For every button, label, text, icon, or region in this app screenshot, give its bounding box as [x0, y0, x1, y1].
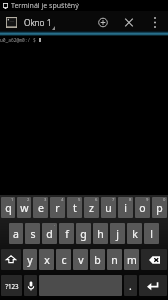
button[interactable]: Okno 1	[0, 11, 58, 34]
button[interactable]: e	[33, 197, 48, 218]
staticText: y	[27, 253, 33, 267]
button[interactable]: n	[107, 249, 122, 270]
button[interactable]: d	[42, 223, 57, 244]
staticText: 1	[11, 197, 14, 203]
staticText: k	[132, 227, 138, 241]
staticText: u0_a62@m0:/ $	[0, 37, 39, 43]
staticText: Okno 1	[24, 17, 52, 28]
staticText: a	[13, 227, 19, 241]
staticText: 2	[27, 197, 30, 203]
staticText: x	[44, 253, 50, 267]
staticText: h	[97, 227, 104, 241]
staticText: 5	[78, 197, 81, 203]
button[interactable]: mic	[24, 275, 37, 296]
staticText: ·	[54, 223, 56, 229]
staticText: 6	[95, 197, 98, 203]
staticText: e	[38, 201, 44, 215]
staticText: 8	[129, 197, 132, 203]
button[interactable]: x	[39, 249, 54, 270]
staticText: 3	[44, 197, 47, 203]
button[interactable]: c	[56, 249, 71, 270]
button[interactable]: i	[118, 197, 133, 218]
staticText: w	[20, 201, 29, 215]
button[interactable]: Close window	[116, 11, 142, 34]
button[interactable]: y	[23, 249, 37, 270]
button[interactable]: v	[73, 249, 88, 270]
button[interactable]: o	[135, 197, 150, 218]
staticText: o	[139, 201, 146, 215]
button[interactable]: k	[127, 223, 142, 244]
button[interactable]: New window	[90, 11, 116, 34]
button[interactable]: m	[124, 249, 139, 270]
button[interactable]: u	[101, 197, 116, 218]
staticText: l	[150, 227, 153, 241]
staticText: c	[61, 253, 67, 267]
button[interactable]: enter	[139, 275, 167, 296]
button[interactable]: g	[76, 223, 91, 244]
button[interactable]: z	[84, 197, 99, 218]
staticText: r	[55, 201, 60, 215]
button[interactable]: shift	[1, 249, 21, 270]
staticText: n	[111, 253, 118, 267]
button[interactable]: p	[152, 197, 167, 218]
button[interactable]: r	[50, 197, 65, 218]
button[interactable]: l	[144, 223, 159, 244]
button[interactable]: h	[93, 223, 108, 244]
staticText: i	[124, 201, 127, 215]
staticText: v	[78, 253, 84, 267]
staticText: b	[94, 253, 101, 267]
staticText: f	[65, 227, 69, 241]
staticText: 4	[61, 197, 64, 203]
staticText: ?123	[5, 282, 19, 290]
staticText: z	[89, 201, 94, 215]
button[interactable]: t	[67, 197, 82, 218]
staticText: t	[73, 201, 77, 215]
staticText: 0	[163, 197, 166, 203]
staticText: m	[127, 253, 137, 267]
staticText: q	[5, 201, 12, 215]
button[interactable]: a	[9, 223, 23, 244]
button[interactable]: ?123	[1, 275, 22, 296]
staticText: p	[156, 201, 163, 215]
button[interactable]: More options	[142, 11, 168, 34]
staticText: .	[129, 279, 132, 293]
button[interactable]: j	[110, 223, 125, 244]
staticText: d	[46, 227, 53, 241]
staticText: Terminál je spuštěný	[11, 1, 79, 11]
button[interactable]: q	[1, 197, 15, 218]
button[interactable]: s	[25, 223, 40, 244]
button[interactable]: f	[59, 223, 74, 244]
button[interactable]: w	[17, 197, 31, 218]
staticText: g	[80, 227, 87, 241]
staticText: u	[105, 201, 112, 215]
staticText: j	[116, 227, 119, 241]
staticText: s	[30, 227, 36, 241]
staticText: 7	[112, 197, 115, 203]
button[interactable]: .	[124, 275, 137, 296]
button[interactable]: back	[141, 249, 167, 270]
button[interactable]: b	[90, 249, 105, 270]
staticText: 9	[146, 197, 149, 203]
